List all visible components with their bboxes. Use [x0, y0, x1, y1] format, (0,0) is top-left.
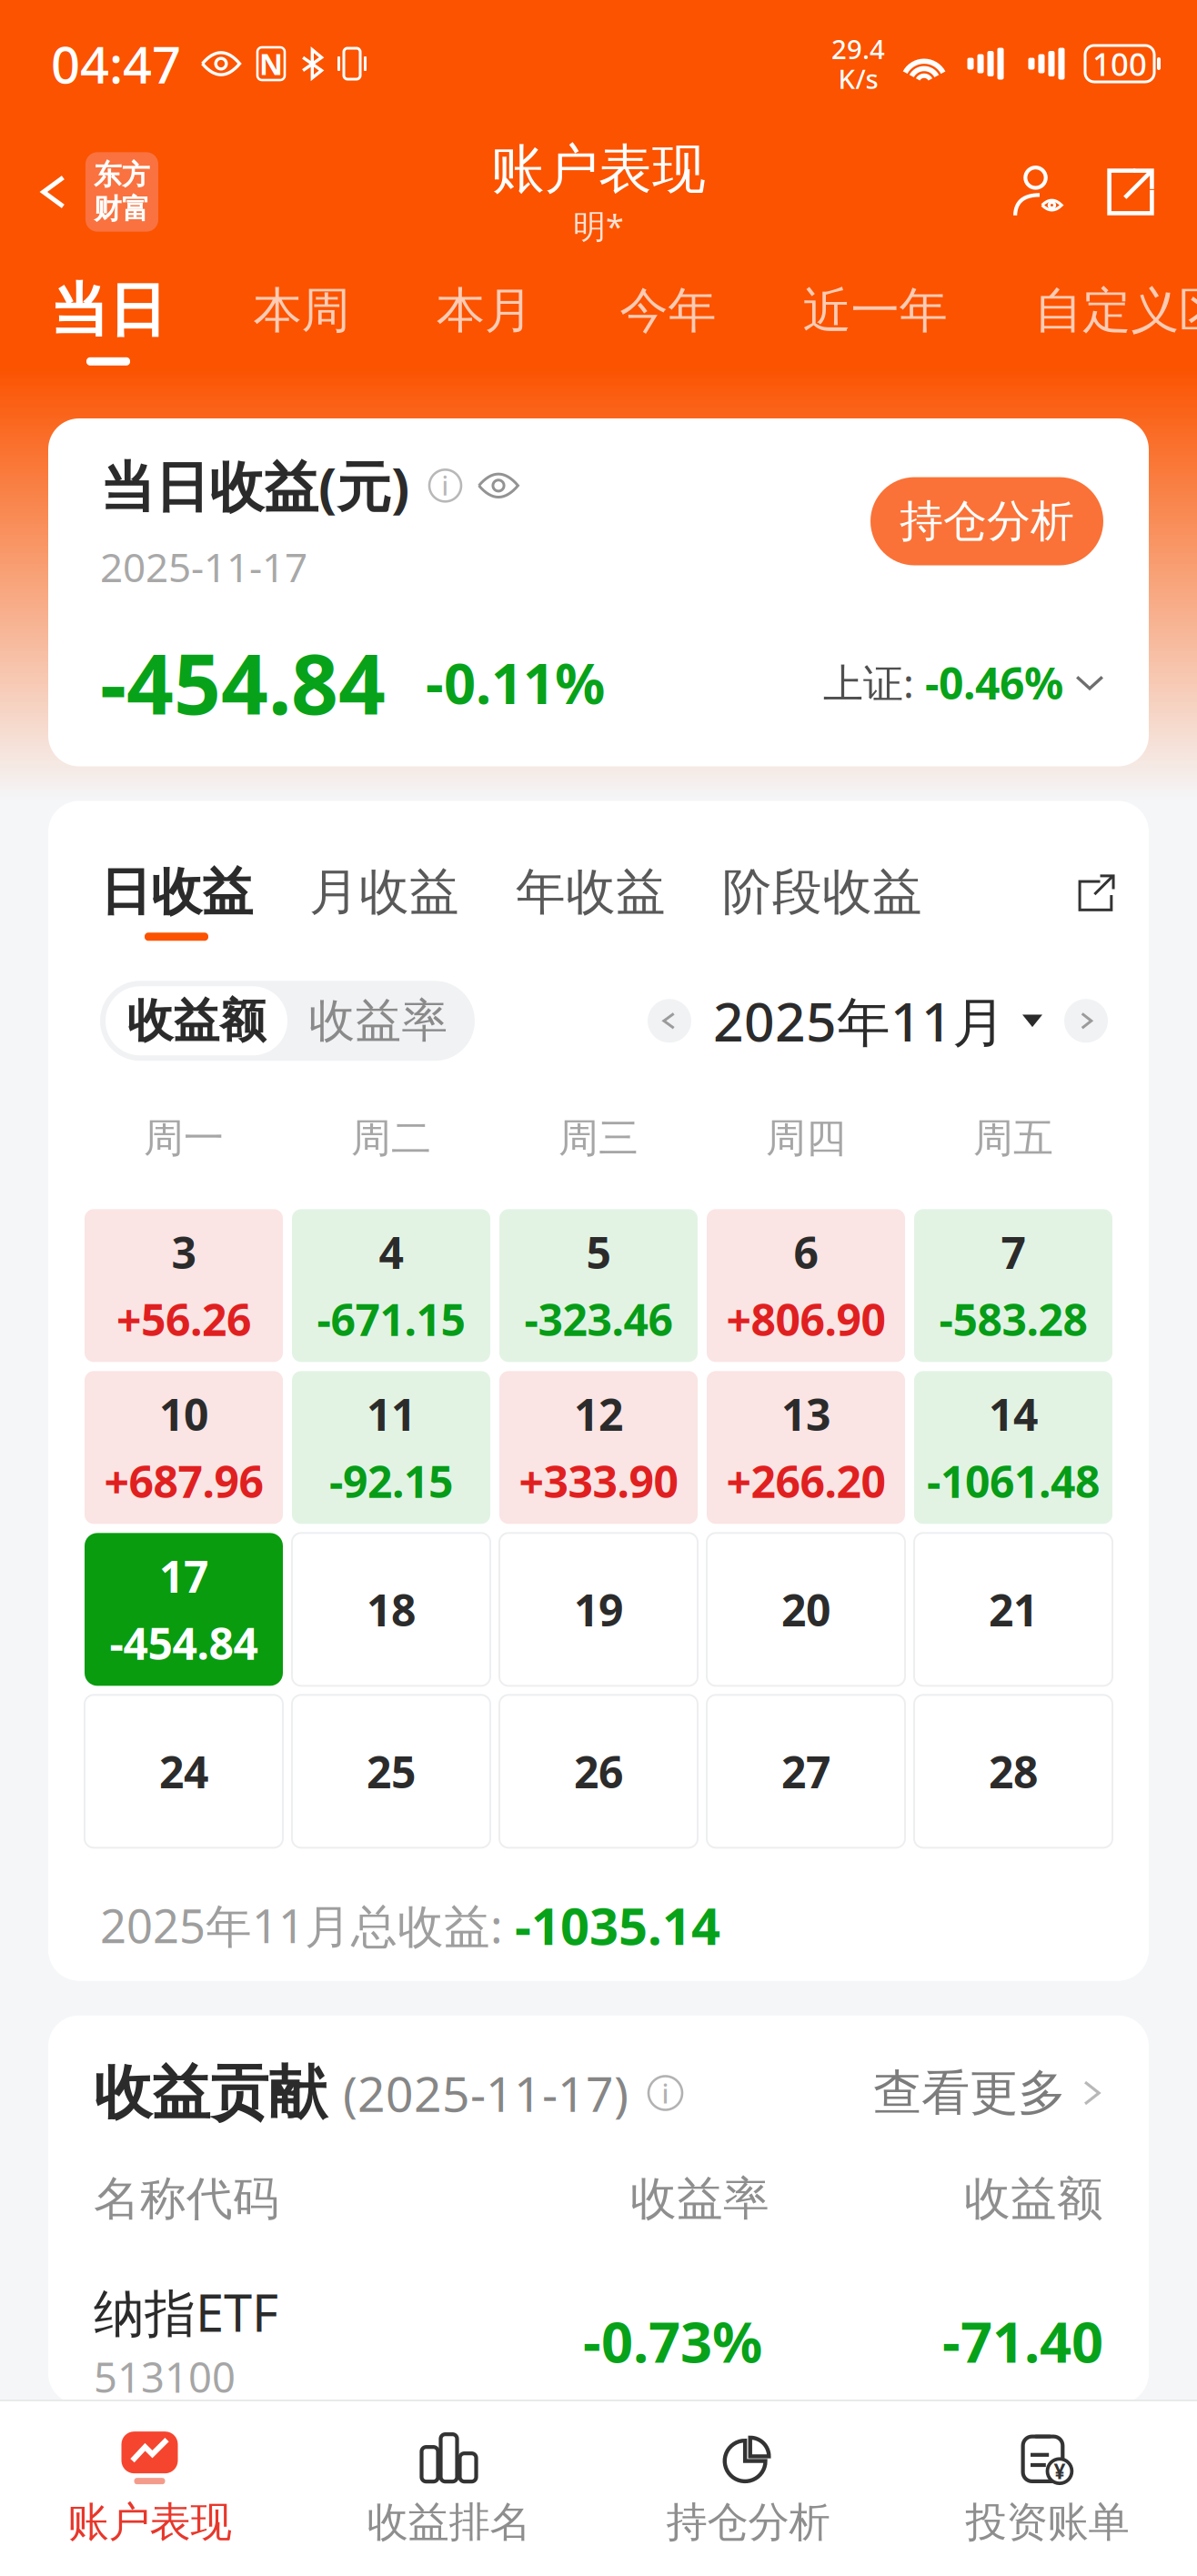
staticText: i: [662, 2075, 669, 2111]
staticText: 5: [586, 1223, 611, 1281]
staticText: 今年: [620, 281, 716, 340]
staticText: 3: [171, 1223, 196, 1281]
staticText: 2025-11-17: [100, 540, 307, 593]
button[interactable]: 4: [292, 1209, 490, 1362]
button[interactable]: 近一年: [803, 269, 947, 371]
button[interactable]: 纳指ETF: [94, 2278, 1103, 2404]
staticText: 上证:: [823, 656, 914, 709]
staticText: -583.28: [939, 1290, 1087, 1348]
staticText: 近一年: [803, 281, 947, 340]
button[interactable]: 当日: [50, 269, 166, 371]
button[interactable]: 17: [85, 1533, 283, 1686]
staticText: 100: [1092, 43, 1147, 85]
staticText: 29.4: [831, 31, 885, 66]
staticText: 周四: [766, 1114, 846, 1163]
button[interactable]: 18: [292, 1533, 490, 1686]
button[interactable]: 账户表现: [0, 2401, 299, 2576]
button[interactable]: 2025年11月: [713, 985, 1042, 1056]
staticText: -1061.48: [927, 1452, 1100, 1510]
button[interactable]: 6: [707, 1209, 905, 1362]
staticText: 6: [794, 1223, 818, 1281]
staticText: 年收益: [516, 862, 666, 923]
button[interactable]: 21: [914, 1533, 1112, 1686]
staticText: 11: [367, 1385, 416, 1443]
button[interactable]: 27: [707, 1695, 905, 1848]
button[interactable]: 12: [499, 1371, 698, 1524]
staticText: 自定义区间: [1034, 281, 1197, 340]
button[interactable]: 阶段收益: [722, 862, 922, 940]
staticText: 周二: [351, 1114, 431, 1163]
button[interactable]: 月收益: [309, 862, 459, 940]
button[interactable]: 年收益: [516, 862, 666, 940]
staticText: 20: [781, 1580, 830, 1638]
staticText: 财富: [94, 192, 150, 226]
button[interactable]: 10: [85, 1371, 283, 1524]
button[interactable]: 3: [85, 1209, 283, 1362]
button[interactable]: 25: [292, 1695, 490, 1848]
staticText: 收益额: [964, 2171, 1103, 2227]
staticText: 当日: [50, 275, 166, 346]
staticText: 持仓分析: [900, 494, 1074, 548]
staticText: +687.96: [104, 1452, 263, 1510]
staticText: 收益排名: [367, 2497, 531, 2548]
staticText: -71.40: [942, 2304, 1103, 2378]
button[interactable]: Back: [0, 127, 176, 257]
staticText: 周五: [973, 1114, 1053, 1163]
button[interactable]: 收益率: [287, 986, 469, 1055]
button[interactable]: 收益额: [106, 986, 287, 1055]
button[interactable]: 自定义区间: [1034, 269, 1197, 371]
staticText: +266.20: [726, 1452, 885, 1510]
staticText: 14: [989, 1385, 1038, 1443]
staticText: 27: [781, 1742, 830, 1800]
staticText: 日收益: [100, 861, 253, 924]
staticText: 收益率: [630, 2171, 769, 2227]
staticText: 10: [159, 1385, 208, 1443]
staticText: -92.15: [329, 1452, 453, 1510]
button[interactable]: 日收益: [100, 861, 253, 941]
staticText: +333.90: [519, 1452, 678, 1510]
staticText: 21: [989, 1580, 1038, 1638]
staticText: 收益贡献: [94, 2057, 327, 2129]
staticText: N: [259, 44, 283, 83]
button[interactable]: 13: [707, 1371, 905, 1524]
staticText: 周三: [558, 1114, 639, 1163]
button[interactable]: 本周: [253, 269, 350, 371]
button[interactable]: 26: [499, 1695, 698, 1848]
button[interactable]: 收益排名: [299, 2401, 598, 2576]
staticText: 周一: [144, 1114, 224, 1163]
button[interactable]: 11: [292, 1371, 490, 1524]
button[interactable]: 今年: [620, 269, 716, 371]
button[interactable]: 持仓分析: [870, 477, 1103, 565]
staticText: 查看更多: [873, 2063, 1066, 2123]
staticText: 13: [781, 1385, 830, 1443]
button[interactable]: 查看更多: [873, 2063, 1103, 2123]
button[interactable]: 24: [85, 1695, 283, 1848]
staticText: 19: [574, 1580, 623, 1638]
button[interactable]: Share: [1091, 153, 1170, 231]
button[interactable]: Account: [1001, 153, 1079, 231]
staticText: i: [442, 469, 449, 502]
button[interactable]: 28: [914, 1695, 1112, 1848]
button[interactable]: 20: [707, 1533, 905, 1686]
button[interactable]: Previous month: [648, 999, 691, 1043]
staticText: 4: [379, 1223, 403, 1281]
staticText: 收益额: [127, 993, 266, 1049]
staticText: 本周: [253, 281, 350, 340]
staticText: +56.26: [116, 1290, 251, 1348]
staticText: +806.90: [726, 1290, 885, 1348]
staticText: ¥: [1054, 2457, 1065, 2485]
button[interactable]: 5: [499, 1209, 698, 1362]
button[interactable]: 7: [914, 1209, 1112, 1362]
button[interactable]: 19: [499, 1533, 698, 1686]
staticText: 纳指ETF: [94, 2278, 278, 2346]
button[interactable]: 14: [914, 1371, 1112, 1524]
staticText: -454.84: [100, 628, 386, 737]
button[interactable]: Next month: [1064, 999, 1108, 1043]
button[interactable]: Share: [1077, 873, 1117, 929]
button[interactable]: 持仓分析: [598, 2401, 898, 2576]
button[interactable]: 本月: [436, 269, 533, 371]
staticText: -0.11%: [426, 645, 605, 719]
staticText: -1035.14: [515, 1891, 720, 1959]
button[interactable]: ¥: [898, 2401, 1197, 2576]
staticText: -671.15: [317, 1290, 465, 1348]
